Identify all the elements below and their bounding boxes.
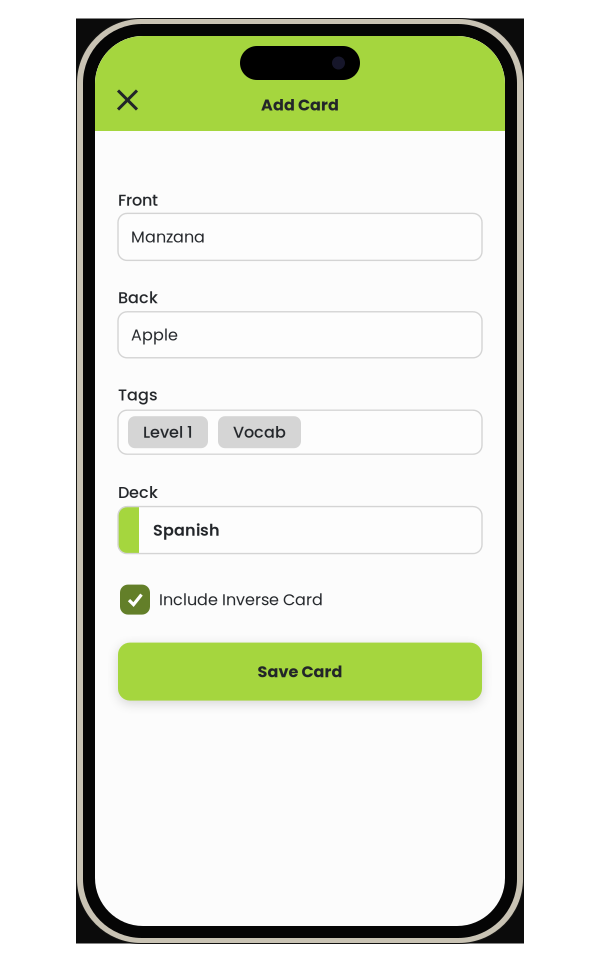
- button[interactable]: Spanish: [118, 507, 482, 554]
- staticText: Apple: [131, 324, 178, 346]
- staticText: Spanish: [153, 519, 220, 541]
- button[interactable]: Include Inverse Card: [118, 585, 482, 615]
- button[interactable]: Save Card: [118, 643, 482, 701]
- staticText: Save Card: [257, 660, 342, 683]
- staticText: Vocab: [233, 421, 286, 443]
- staticText: Level 1: [143, 421, 193, 443]
- button[interactable]: Level 1: [128, 416, 208, 448]
- staticText: Add Card: [261, 94, 339, 116]
- staticText: Manzana: [131, 226, 205, 248]
- button[interactable]: Vocab: [218, 416, 301, 448]
- button[interactable]: Close: [111, 83, 144, 116]
- staticText: Back: [118, 286, 158, 309]
- staticText: Deck: [118, 481, 158, 504]
- staticText: Tags: [118, 384, 158, 406]
- staticText: Front: [118, 189, 158, 211]
- staticText: Include Inverse Card: [159, 588, 323, 611]
